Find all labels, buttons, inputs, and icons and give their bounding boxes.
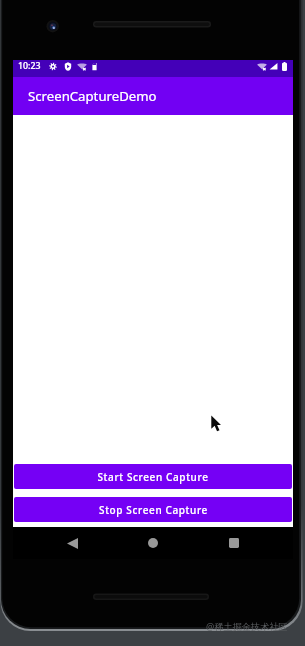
staticText: Start Screen Capture [97, 470, 209, 484]
button[interactable]: Start Screen Capture [14, 464, 292, 489]
button[interactable]: Back [53, 527, 91, 559]
staticText: ScreenCaptureDemo [28, 87, 157, 105]
staticText: 10:23 [18, 60, 41, 72]
button[interactable]: Stop Screen Capture [14, 497, 292, 522]
button[interactable]: Home [134, 527, 172, 559]
button[interactable]: ScreenCaptureDemo [13, 77, 293, 115]
staticText: Stop Screen Capture [99, 503, 208, 517]
staticText: @稀土掘金技术社区 [206, 620, 288, 633]
button[interactable]: Recent apps [215, 527, 253, 559]
